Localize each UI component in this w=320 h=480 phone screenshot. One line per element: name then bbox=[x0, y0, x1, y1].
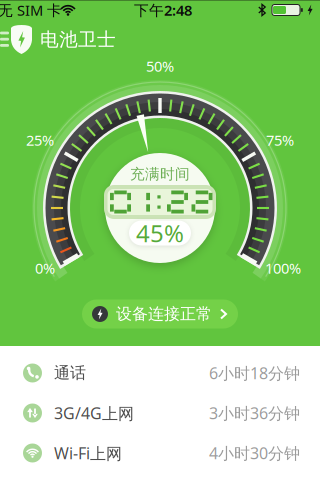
staticText: 无 SIM 卡 bbox=[0, 0, 62, 20]
staticText: 45% bbox=[136, 217, 184, 249]
staticText: 75% bbox=[266, 130, 294, 150]
staticText: 3小时36分钟 bbox=[209, 402, 300, 424]
staticText: 50% bbox=[146, 56, 174, 76]
staticText: 设备连接正常 bbox=[116, 304, 212, 324]
staticText: 下午2:48 bbox=[134, 0, 192, 20]
staticText: 100% bbox=[265, 258, 301, 278]
button[interactable]: Menu bbox=[0, 27, 14, 51]
staticText: 6小时18分钟 bbox=[209, 362, 300, 384]
staticText: 3G/4G上网 bbox=[54, 402, 134, 424]
staticText: 25% bbox=[26, 130, 54, 150]
button[interactable]: 设备连接正常 bbox=[82, 299, 238, 328]
staticText: 充满时间 bbox=[130, 165, 190, 183]
staticText: Wi-Fi上网 bbox=[54, 442, 122, 464]
staticText: 0% bbox=[35, 258, 55, 278]
staticText: 电池卫士 bbox=[40, 28, 116, 51]
staticText: 4小时30分钟 bbox=[209, 442, 300, 464]
staticText: 通话 bbox=[54, 363, 86, 383]
